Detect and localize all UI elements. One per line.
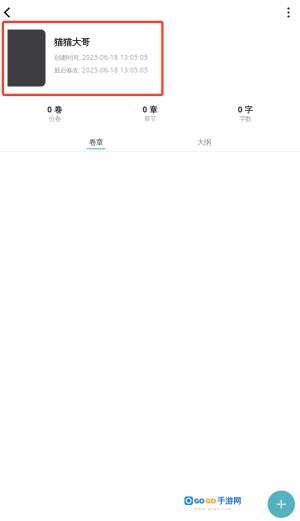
staticText: 猫猫大哥 [54, 36, 90, 48]
staticText: GO [194, 496, 205, 506]
button[interactable]: 大纲 [150, 130, 258, 151]
button[interactable]: Back [0, 0, 26, 25]
staticText: 卷章 [89, 137, 103, 147]
staticText: 手游网 [217, 496, 241, 506]
staticText: 分卷 [49, 115, 61, 123]
staticText: GO [205, 496, 216, 506]
staticText: 0 字 [238, 104, 253, 115]
staticText: 0 卷 [47, 104, 62, 115]
staticText: 创建时间: 2025-06-18 13:05:05 [54, 53, 148, 62]
staticText: 0 章 [142, 104, 157, 115]
staticText: w w w . g o g o . c o m [194, 506, 231, 511]
button[interactable]: More options [277, 0, 299, 25]
staticText: 最后修改: 2025-06-18 13:05:05 [54, 66, 148, 74]
staticText: 章节 [144, 115, 156, 123]
button[interactable]: Add [265, 488, 297, 520]
button[interactable]: 卷章 [42, 130, 150, 151]
staticText: 大纲 [197, 137, 211, 147]
staticText: 字数 [239, 115, 251, 123]
